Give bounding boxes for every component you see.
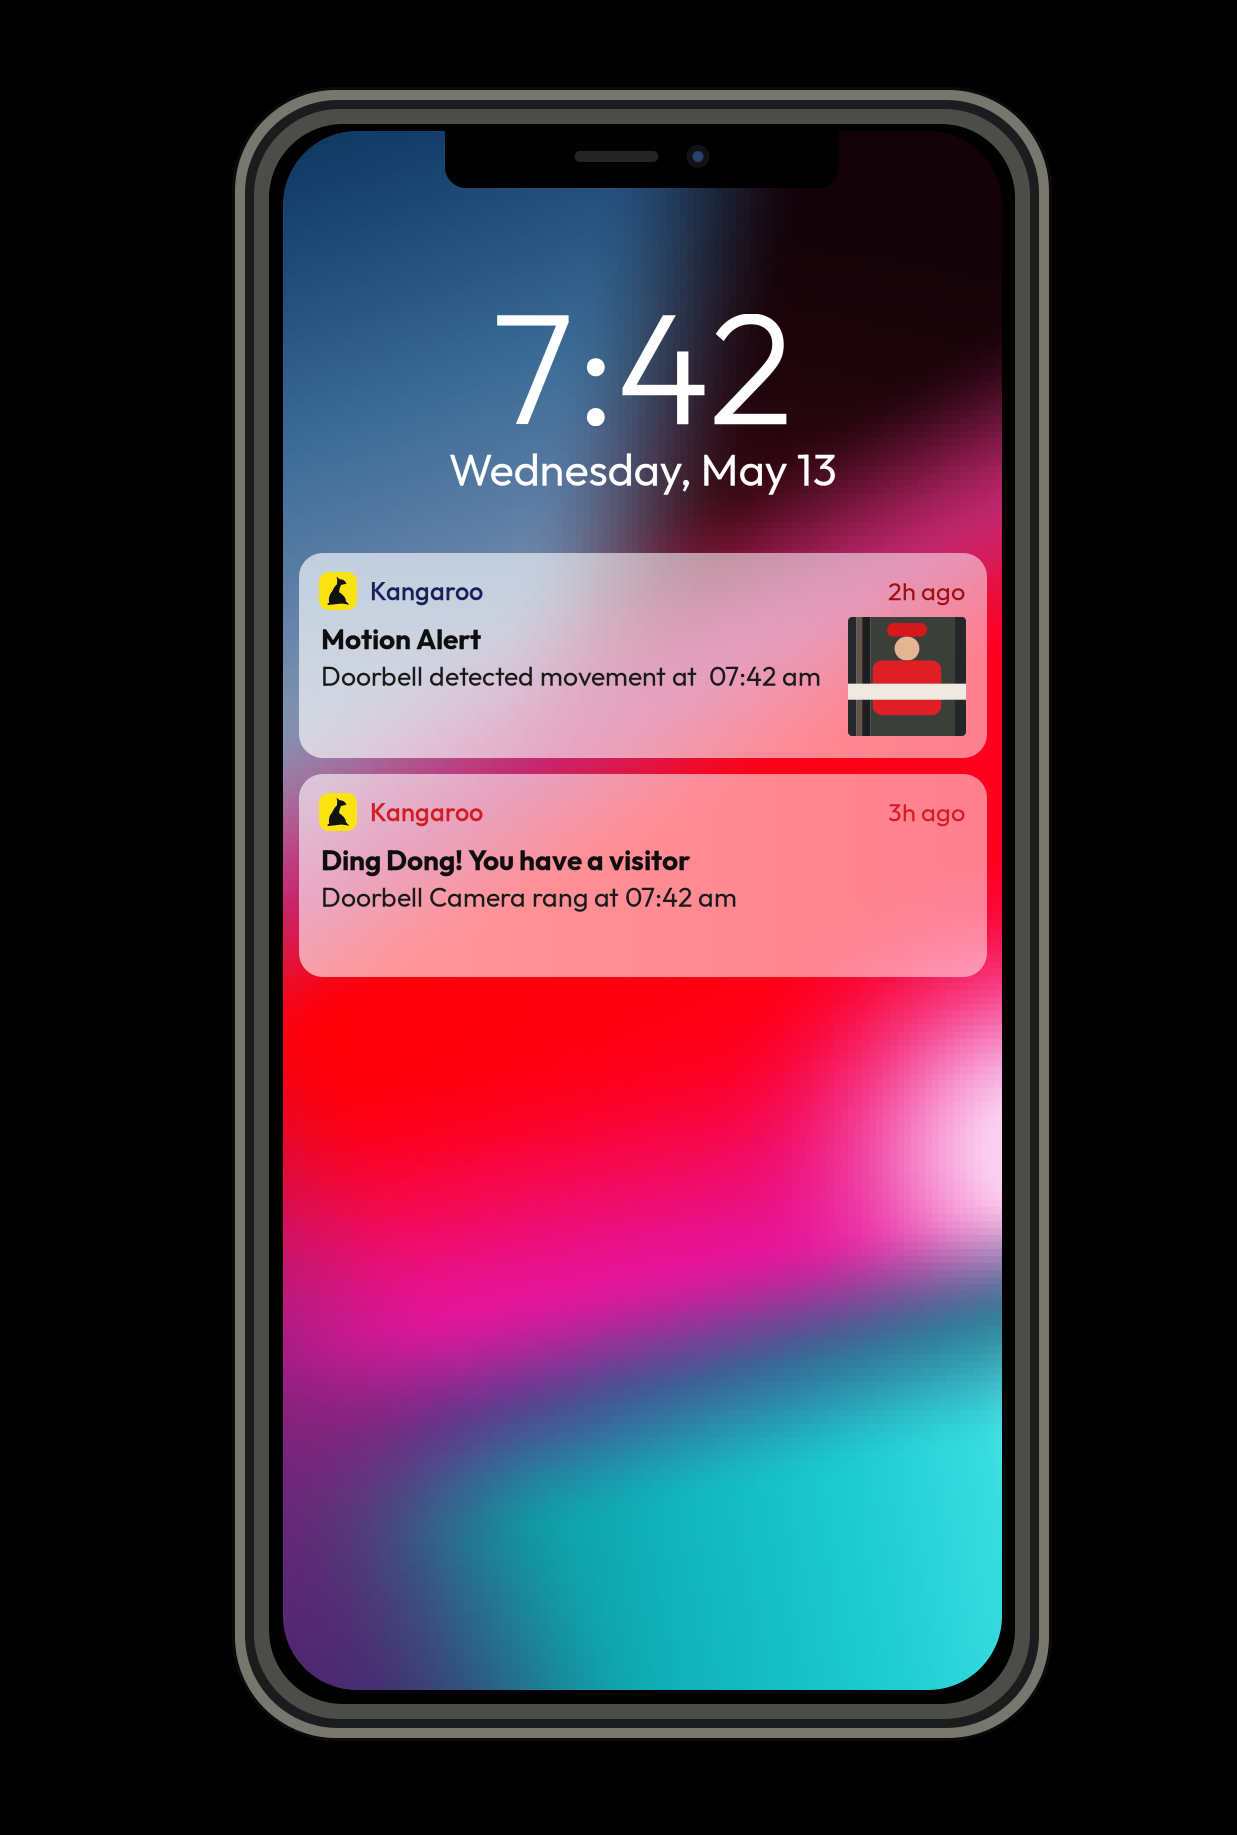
staticText: Motion Alert <box>321 621 481 657</box>
staticText: Ding Dong! You have a visitor <box>321 842 690 878</box>
staticText: Kangaroo <box>370 575 483 607</box>
staticText: Doorbell Camera rang at 07:42 am <box>321 880 737 914</box>
staticText: Doorbell detected movement at 07:42 am <box>321 659 821 693</box>
staticText: 2h ago <box>888 575 965 607</box>
staticText: Kangaroo <box>370 796 483 828</box>
button[interactable]: Kangaroo <box>299 553 987 758</box>
button[interactable]: Kangaroo <box>299 774 987 977</box>
staticText: 3h ago <box>888 796 965 828</box>
staticText: 7:42 <box>491 267 793 465</box>
staticText: Wednesday, May 13 <box>448 440 836 497</box>
